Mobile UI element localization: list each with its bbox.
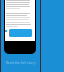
button[interactable]: Open report xyxy=(9,29,32,37)
staticText: Read the full story xyxy=(5,60,35,65)
